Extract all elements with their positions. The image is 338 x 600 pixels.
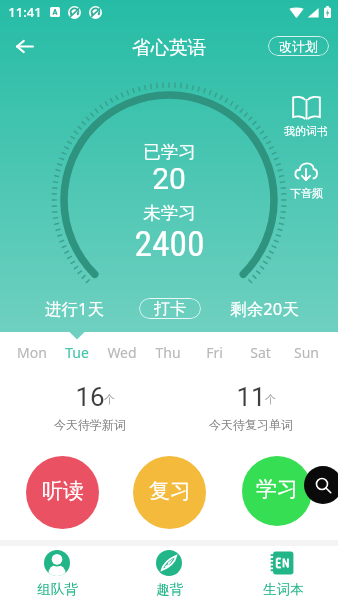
button[interactable]: 打卡: [139, 298, 201, 319]
staticText: 已学习: [143, 141, 196, 163]
staticText: 听读: [42, 478, 84, 504]
button[interactable]: Tue: [54, 341, 99, 363]
button[interactable]: 听读: [26, 456, 99, 529]
button[interactable]: 复习: [133, 456, 206, 529]
staticText: 下音频: [290, 186, 323, 200]
staticText: 组队背: [37, 581, 78, 598]
button[interactable]: Search: [304, 466, 338, 504]
button[interactable]: 趣背: [141, 546, 197, 600]
staticText: Fri: [206, 343, 223, 362]
staticText: 生词本: [263, 581, 304, 598]
button[interactable]: Fri: [191, 341, 237, 363]
button[interactable]: 我的词书: [281, 95, 331, 138]
staticText: 个: [265, 392, 276, 406]
button[interactable]: 改计划: [268, 36, 329, 56]
staticText: 剩余20天: [230, 297, 299, 319]
staticText: 复习: [149, 478, 191, 504]
button[interactable]: 11: [191, 382, 311, 434]
button[interactable]: Sun: [283, 341, 329, 363]
staticText: 20: [152, 161, 186, 196]
button[interactable]: Wed: [99, 341, 145, 363]
staticText: 11:41: [8, 3, 42, 21]
staticText: 个: [104, 392, 115, 406]
button[interactable]: Thu: [145, 341, 191, 363]
staticText: 2400: [134, 223, 205, 265]
staticText: 未学习: [143, 202, 196, 224]
button[interactable]: 剩余20天: [219, 297, 309, 319]
staticText: Tue: [65, 343, 89, 362]
staticText: Sat: [250, 343, 271, 362]
button[interactable]: Mon: [9, 341, 54, 363]
button[interactable]: 进行1天: [34, 297, 114, 319]
button[interactable]: 16: [30, 382, 150, 434]
staticText: 趣背: [156, 581, 183, 598]
staticText: 学习: [256, 476, 298, 502]
staticText: 省心英语: [132, 36, 206, 59]
staticText: 16: [75, 382, 105, 412]
staticText: 进行1天: [45, 297, 104, 319]
button[interactable]: Sat: [237, 341, 283, 363]
staticText: 11: [236, 382, 266, 412]
staticText: 打卡: [154, 299, 186, 319]
button[interactable]: 下音频: [281, 161, 331, 200]
staticText: Thu: [155, 343, 181, 362]
button[interactable]: 生词本: [255, 546, 311, 600]
staticText: 我的词书: [284, 124, 328, 138]
button[interactable]: 组队背: [29, 546, 85, 600]
button[interactable]: 学习: [242, 456, 312, 526]
staticText: 改计划: [279, 38, 318, 54]
staticText: Wed: [107, 343, 137, 362]
staticText: Mon: [17, 343, 47, 362]
staticText: Sun: [294, 343, 319, 362]
button[interactable]: Back: [6, 28, 42, 64]
staticText: 今天待复习单词: [209, 417, 293, 432]
staticText: 今天待学新词: [54, 417, 126, 432]
